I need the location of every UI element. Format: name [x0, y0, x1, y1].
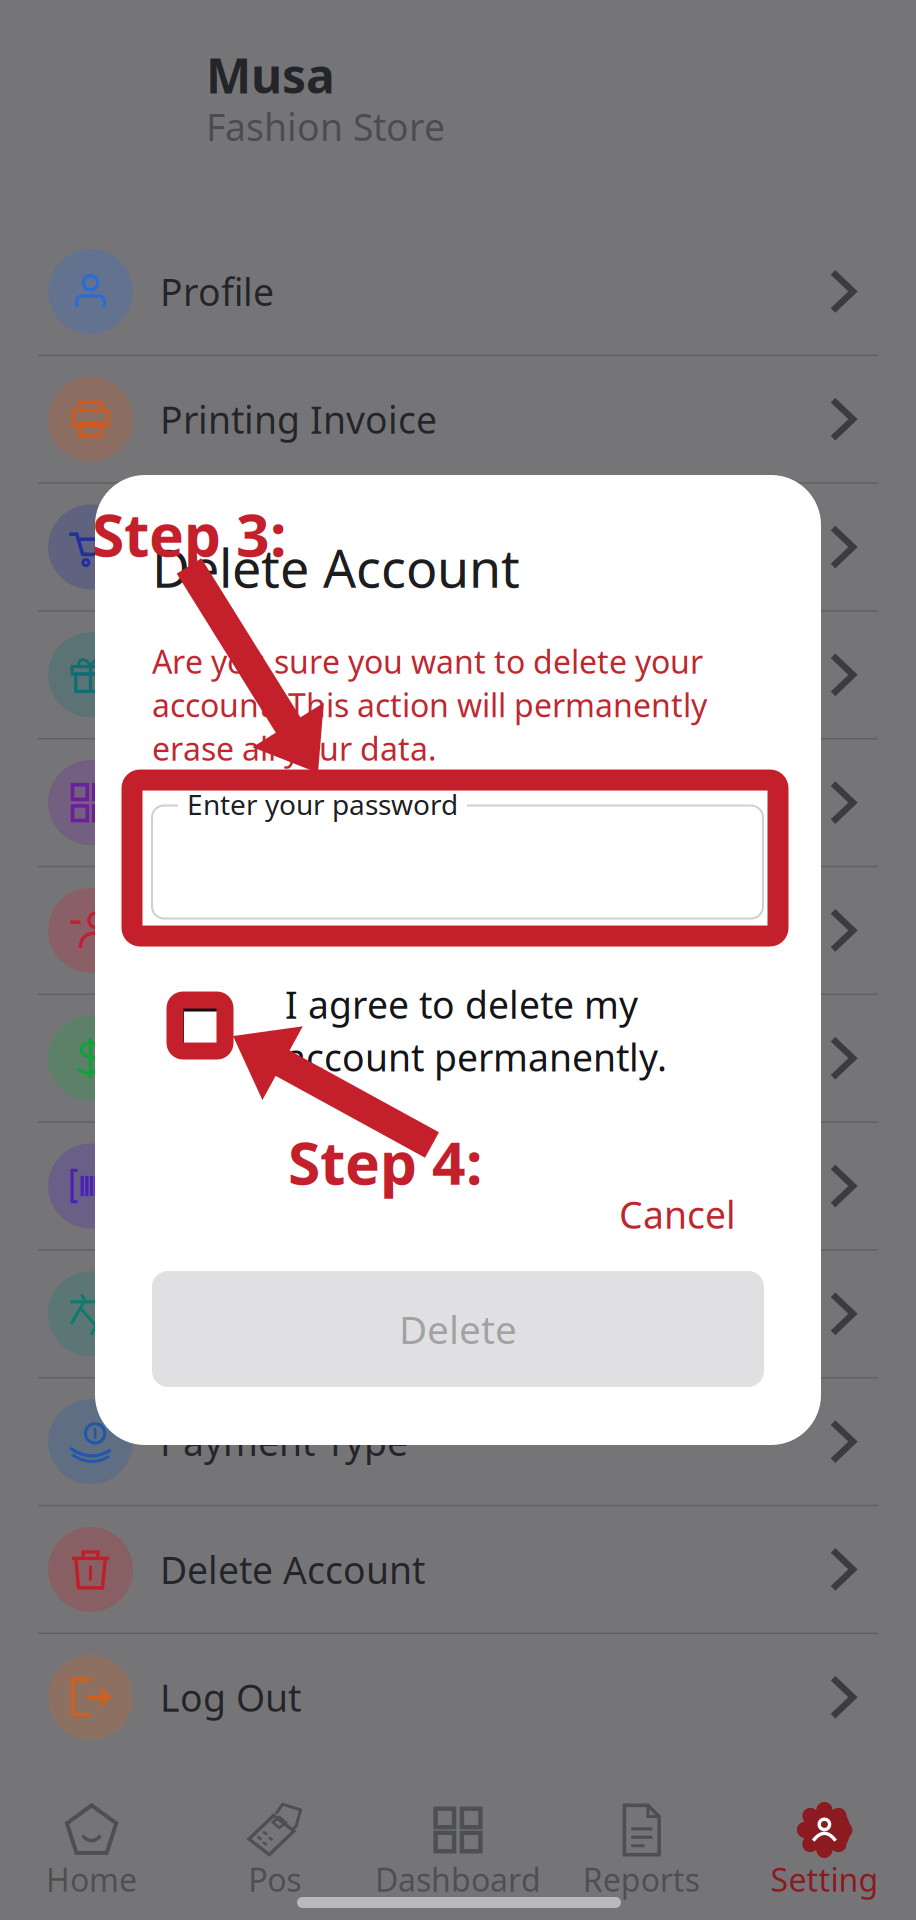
staticText: Delete Account [160, 1545, 425, 1594]
staticText: Profile [160, 267, 274, 316]
staticText: Setting [770, 1858, 878, 1900]
button[interactable]: Currency [0, 995, 916, 1121]
button[interactable]: Printing Invoice [0, 356, 916, 482]
button[interactable]: Payment Type [0, 1378, 916, 1505]
button[interactable]: Home [0, 1802, 183, 1900]
staticText: Currency [160, 1033, 318, 1083]
staticText: I agree to delete my account permanently… [285, 979, 667, 1082]
staticText: Dashboard [375, 1858, 541, 1900]
staticText: Delete Account [152, 533, 520, 602]
button[interactable]: Order [0, 484, 916, 610]
button[interactable]: Offers [0, 612, 916, 738]
staticText: Printing Invoice [160, 394, 437, 444]
button[interactable]: Customers [0, 867, 916, 993]
button[interactable]: Categories [0, 739, 916, 866]
staticText: Delete [399, 1303, 517, 1355]
button[interactable]: Setting [733, 1802, 916, 1900]
button[interactable]: Cancel [611, 1183, 744, 1245]
staticText: Payment Type [160, 1417, 408, 1466]
staticText: Step 4: [288, 1123, 482, 1201]
staticText: Reports [583, 1858, 700, 1900]
staticText: Barcode [160, 1161, 305, 1211]
staticText: Log Out [160, 1672, 301, 1722]
button[interactable]: Delete [152, 1271, 764, 1387]
staticText: Order [160, 522, 263, 572]
staticText: Musa [206, 43, 335, 107]
button[interactable]: Profile [0, 228, 916, 354]
button[interactable]: Dashboard [366, 1802, 550, 1900]
button[interactable]: Language [0, 1251, 916, 1377]
button[interactable]: Reports [550, 1802, 733, 1900]
button[interactable]: Barcode [0, 1123, 916, 1249]
staticText: Pos [248, 1858, 301, 1900]
staticText: Categories [160, 778, 349, 827]
staticText: Cancel [619, 1189, 736, 1239]
staticText: Offers [160, 650, 269, 700]
staticText: Are you sure you want to delete your acc… [152, 640, 707, 770]
staticText: Home [46, 1858, 137, 1900]
staticText: Customers [160, 906, 350, 955]
staticText: Enter your password [187, 785, 458, 823]
button[interactable]: Delete Account [0, 1506, 916, 1632]
button[interactable]: Pos [183, 1802, 366, 1900]
button[interactable]: Log Out [0, 1634, 916, 1760]
staticText: Fashion Store [206, 102, 445, 151]
staticText: Step 3: [92, 495, 286, 573]
